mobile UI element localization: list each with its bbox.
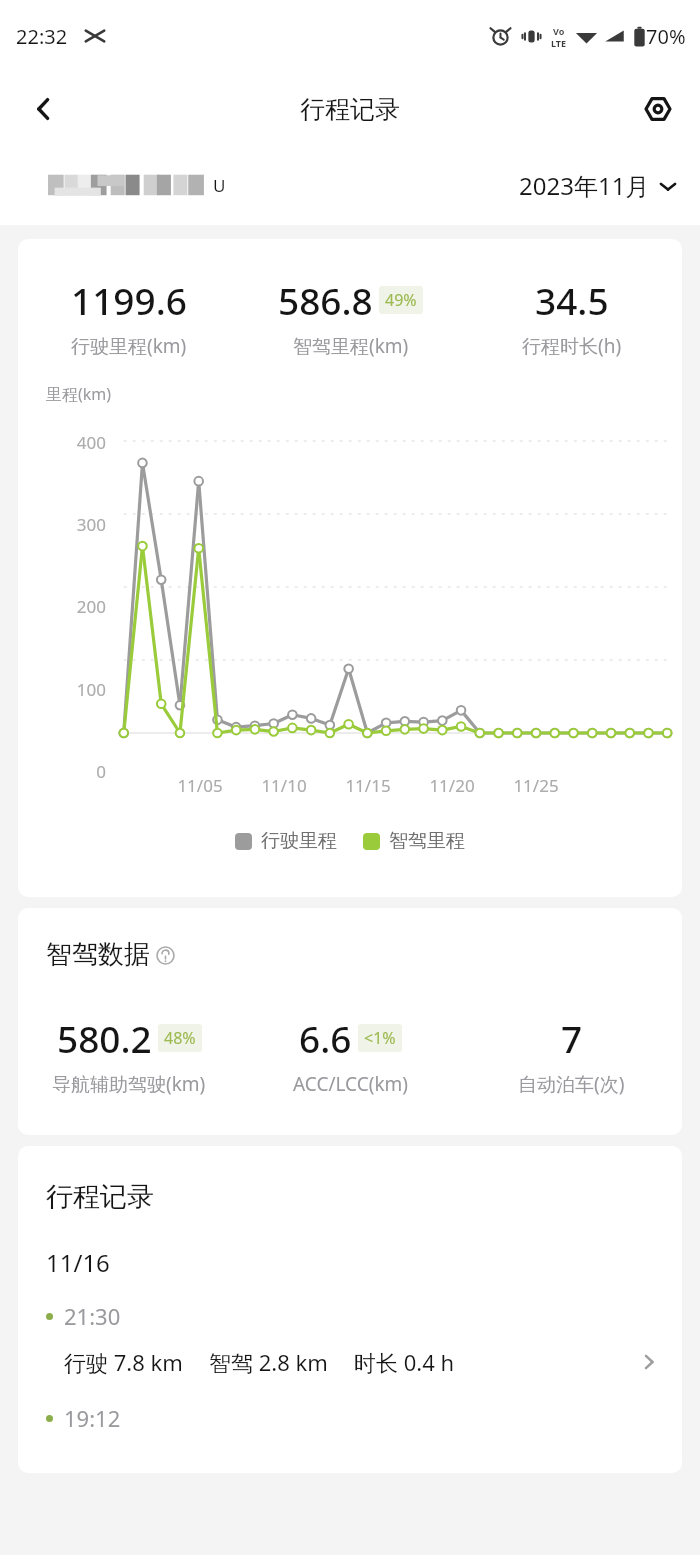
staticText: 里程(km) bbox=[46, 383, 112, 405]
staticText: U bbox=[213, 174, 226, 197]
staticText: 11/05 bbox=[158, 774, 242, 797]
staticText: 21:30 bbox=[64, 1301, 121, 1331]
staticText: 300 bbox=[18, 513, 106, 536]
staticText: 580.2 bbox=[57, 1013, 152, 1063]
staticText: 11/16 bbox=[46, 1246, 110, 1279]
staticText: 智驾数据 bbox=[46, 938, 150, 971]
staticText: 行驶里程(km) bbox=[71, 333, 187, 359]
staticText: 智驾里程 bbox=[389, 829, 465, 853]
staticText: 行程时长(h) bbox=[522, 333, 622, 359]
staticText: <1% bbox=[364, 1027, 396, 1049]
button[interactable]: Back bbox=[20, 85, 68, 133]
button[interactable]: Help bbox=[154, 944, 176, 966]
staticText: 70% bbox=[646, 23, 686, 50]
staticText: Vo bbox=[553, 25, 565, 37]
staticText: 行驶里程 bbox=[261, 829, 337, 853]
staticText: 100 bbox=[18, 678, 106, 701]
staticText: 2023年11月 bbox=[519, 169, 650, 202]
button[interactable]: 21:30 bbox=[18, 1301, 682, 1377]
staticText: ACC/LCC(km) bbox=[293, 1071, 408, 1097]
staticText: 7 bbox=[561, 1013, 583, 1063]
staticText: 智驾里程(km) bbox=[293, 333, 409, 359]
staticText: 49% bbox=[385, 289, 417, 311]
staticText: 导航辅助驾驶(km) bbox=[52, 1071, 206, 1097]
staticText: 6.6 bbox=[299, 1013, 352, 1063]
staticText: 34.5 bbox=[535, 275, 609, 325]
button[interactable]: Settings bbox=[634, 85, 682, 133]
staticText: 时长 0.4 h bbox=[354, 1347, 455, 1377]
button[interactable]: 2023年11月 bbox=[519, 169, 678, 202]
staticText: 400 bbox=[18, 431, 106, 454]
staticText: 11/10 bbox=[242, 774, 326, 797]
staticText: 19:12 bbox=[64, 1403, 121, 1433]
staticText: 586.8 bbox=[278, 275, 373, 325]
staticText: 0 bbox=[18, 760, 106, 783]
staticText: 1199.6 bbox=[71, 275, 187, 325]
staticText: 11/25 bbox=[494, 774, 578, 797]
staticText: 行驶 7.8 km bbox=[64, 1347, 183, 1377]
staticText: 22:32 bbox=[16, 23, 68, 50]
staticText: 11/20 bbox=[410, 774, 494, 797]
staticText: 11/15 bbox=[326, 774, 410, 797]
staticText: 200 bbox=[18, 595, 106, 618]
staticText: 行程记录 bbox=[300, 94, 400, 125]
staticText: 智驾 2.8 km bbox=[209, 1347, 328, 1377]
staticText: 自动泊车(次) bbox=[518, 1071, 625, 1097]
staticText: 48% bbox=[164, 1027, 196, 1049]
staticText: 行程记录 bbox=[46, 1180, 154, 1214]
staticText: LTE bbox=[551, 37, 567, 49]
